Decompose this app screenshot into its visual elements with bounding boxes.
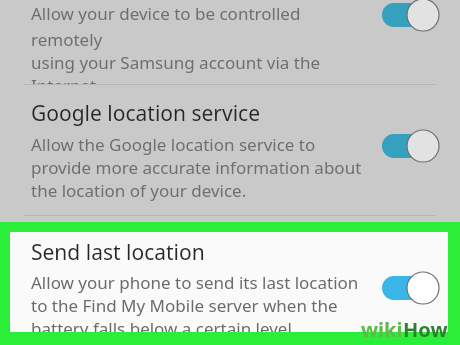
button[interactable]: Remote controls toggle, on: [382, 0, 440, 32]
button[interactable]: Send last location: [10, 232, 448, 332]
button[interactable]: Send last location toggle, on: [382, 271, 440, 305]
staticText: wiki: [361, 316, 403, 343]
staticText: using your Samsung account via the: [31, 51, 321, 74]
button[interactable]: Google location service toggle, on: [382, 129, 440, 163]
staticText: Send last location: [31, 238, 205, 267]
button[interactable]: Google location service: [0, 85, 460, 209]
staticText: the location of your device.: [31, 179, 247, 202]
staticText: Google location service: [31, 99, 261, 128]
staticText: provide more accurate information about: [31, 156, 362, 179]
staticText: Allow your device to be controlled remot…: [31, 2, 361, 51]
button[interactable]: Allow your device to be controlled remot…: [0, 0, 460, 84]
staticText: Internet.: [31, 74, 101, 84]
staticText: Allow your phone to send its last locati…: [31, 271, 359, 294]
staticText: How: [403, 316, 448, 343]
staticText: battery falls below a certain level.: [31, 317, 297, 332]
staticText: to the Find My Mobile server when the: [31, 294, 338, 317]
staticText: Allow the Google location service to: [31, 133, 316, 156]
